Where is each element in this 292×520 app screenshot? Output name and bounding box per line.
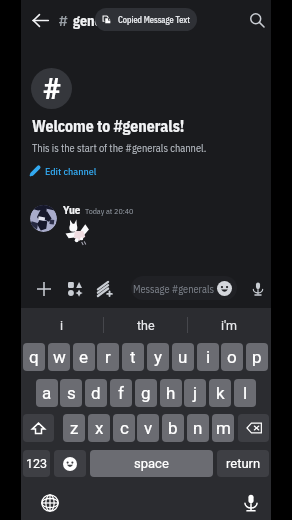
staticText: h [166,383,176,403]
staticText: the [137,318,155,333]
staticText: 123 [26,456,48,471]
button[interactable]: GIF [91,275,118,302]
staticText: m [216,418,231,438]
staticText: Welcome to #generals! [32,116,185,136]
staticText: y [154,347,163,367]
button[interactable]: r [97,343,119,371]
button[interactable]: Voice input [237,489,264,516]
staticText: Message #generals [133,282,214,295]
button[interactable]: v [137,414,159,442]
button[interactable]: space [90,450,213,477]
button[interactable]: i [21,308,103,342]
button[interactable]: Message #generals [131,276,237,300]
button[interactable]: s [60,379,82,407]
button[interactable]: Back [24,4,56,36]
button[interactable]: Change language [36,489,63,516]
staticText: Today at 20:40 [85,206,134,216]
button[interactable]: y [147,343,169,371]
staticText: w [53,347,66,367]
button[interactable]: Backspace [238,414,269,442]
button[interactable]: q [23,343,45,371]
button[interactable]: w [48,343,70,371]
staticText: # [59,11,68,31]
button[interactable]: the [104,308,187,342]
staticText: o [227,347,237,367]
button[interactable]: t [122,343,144,371]
staticText: i [206,347,211,367]
button[interactable]: j [184,379,206,407]
staticText: g [141,383,151,403]
button[interactable]: g [135,379,157,407]
staticText: f [118,383,124,403]
staticText: b [168,418,178,438]
staticText: u [178,347,188,367]
button[interactable]: Stickers [61,275,88,302]
button[interactable]: p [246,343,268,371]
button[interactable]: e [73,343,95,371]
button[interactable]: b [162,414,184,442]
button[interactable]: n [187,414,209,442]
button[interactable]: u [172,343,194,371]
button[interactable]: o [221,343,243,371]
staticText: d [91,383,101,403]
button[interactable]: 123 [23,450,50,477]
staticText: v [144,418,153,438]
button[interactable]: Shift [23,414,54,442]
button[interactable]: Add attachment [30,275,57,302]
staticText: c [120,418,129,438]
button[interactable]: i'm [188,308,271,342]
staticText: e [79,347,89,367]
staticText: x [95,418,104,438]
button[interactable]: i [197,343,219,371]
staticText: q [29,347,39,367]
button[interactable]: d [85,379,107,407]
button[interactable]: a [36,379,58,407]
staticText: s [67,383,76,403]
button[interactable]: c [113,414,135,442]
staticText: a [42,383,52,403]
staticText: Yue [63,203,81,216]
staticText: i'm [221,318,238,333]
staticText: j [193,383,198,403]
button[interactable]: Search [241,4,273,36]
staticText: t [130,347,136,367]
staticText: i [60,318,64,333]
button[interactable]: Voice message [244,275,271,302]
button[interactable]: return [217,450,269,477]
button[interactable]: k [209,379,231,407]
staticText: r [105,347,111,367]
staticText: z [70,418,79,438]
staticText: k [216,383,225,403]
button[interactable]: z [63,414,85,442]
button[interactable]: Edit channel [29,162,97,180]
staticText: generals [73,12,125,30]
staticText: n [193,418,203,438]
button[interactable]: Copied Message Text [95,8,197,31]
staticText: Edit channel [45,165,97,178]
button[interactable]: m [212,414,234,442]
button[interactable]: h [160,379,182,407]
staticText: space [134,456,169,471]
staticText: This is the start of the #generals chann… [32,141,207,155]
staticText: p [252,347,262,367]
staticText: Copied Message Text [118,14,190,25]
staticText: l [243,383,248,403]
button[interactable]: x [88,414,110,442]
staticText: return [226,456,261,471]
button[interactable]: Emoji [54,450,86,477]
staticText: # [43,71,61,106]
button[interactable]: f [110,379,132,407]
button[interactable]: l [234,379,256,407]
